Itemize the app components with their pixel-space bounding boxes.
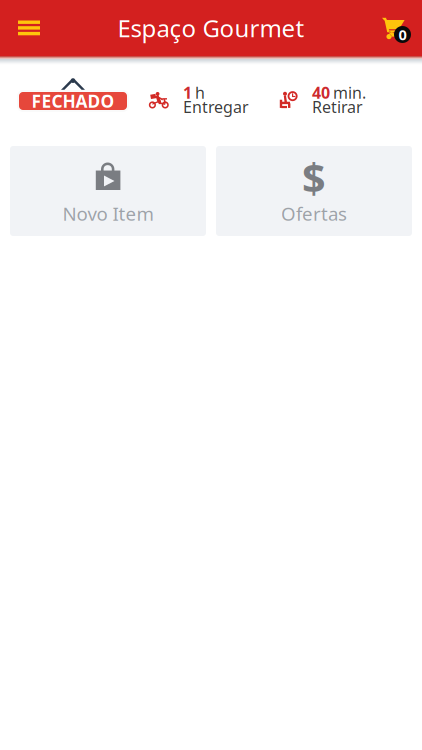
staticText: Espaço Gourmet xyxy=(117,12,304,44)
button[interactable]: Menu xyxy=(5,4,53,52)
staticText: Ofertas xyxy=(281,201,347,226)
staticText: 1 xyxy=(183,82,192,103)
staticText: Retirar xyxy=(312,96,363,117)
staticText: h xyxy=(195,82,205,103)
staticText: 0 xyxy=(398,25,406,44)
staticText: FECHADO xyxy=(31,89,114,112)
staticText: $ xyxy=(302,150,326,204)
staticText: Novo Item xyxy=(62,201,153,226)
button[interactable]: Novo Item xyxy=(10,146,206,236)
staticText: Entregar xyxy=(183,96,249,117)
staticText: 40 xyxy=(312,82,330,103)
button[interactable]: $ xyxy=(216,146,412,236)
staticText: min. xyxy=(333,82,366,103)
button[interactable]: Carrinho xyxy=(381,5,417,51)
